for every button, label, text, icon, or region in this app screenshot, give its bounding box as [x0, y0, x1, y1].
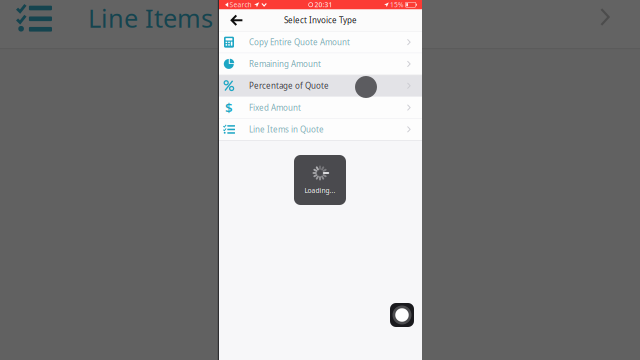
button[interactable]: $ [219, 97, 422, 118]
button[interactable]: Copy Entire Quote Amount [219, 31, 422, 53]
staticText: Line Items in Quote [249, 124, 324, 135]
button[interactable]: Open [592, 4, 618, 30]
staticText: Loading... [304, 186, 335, 195]
staticText: $ [225, 99, 233, 116]
button[interactable]: Remaining Amount [219, 53, 422, 75]
staticText: Copy Entire Quote Amount [249, 37, 350, 47]
staticText: Select Invoice Type [284, 15, 357, 25]
staticText: Remaining Amount [249, 59, 321, 69]
staticText: 15% [390, 0, 404, 9]
button[interactable]: Back [219, 9, 255, 31]
staticText: 20:31 [314, 0, 332, 9]
button[interactable]: Percentage of Quote [219, 75, 422, 96]
staticText: Line Items [88, 1, 213, 35]
staticText: Search [229, 0, 251, 9]
staticText: Fixed Amount [249, 102, 301, 113]
button[interactable]: Line Items in Quote [219, 119, 422, 140]
staticText: Percentage of Quote [249, 80, 329, 91]
